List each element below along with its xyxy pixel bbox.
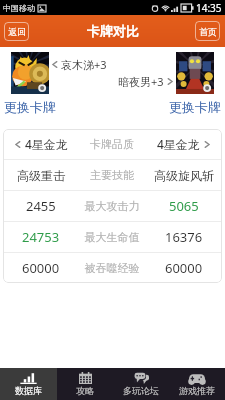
button[interactable]: 多玩论坛: [113, 368, 169, 400]
button[interactable]: 数据库: [0, 368, 57, 400]
staticText: 卡牌品质: [79, 137, 145, 151]
staticText: 高级重击: [17, 168, 65, 183]
staticText: 60000: [165, 259, 203, 277]
staticText: 高级旋风斩: [154, 168, 214, 183]
staticText: 卡牌对比: [87, 23, 139, 39]
staticText: 主要技能: [79, 168, 145, 182]
staticText: 4星金龙: [25, 136, 68, 152]
staticText: 更换卡牌: [169, 99, 221, 115]
button[interactable]: 哀木涕+3: [52, 57, 107, 72]
button[interactable]: 暗夜男+3: [118, 74, 173, 89]
staticText: 数据库: [15, 385, 42, 396]
staticText: 中国移动: [3, 3, 35, 13]
staticText: 最大攻击力: [79, 199, 145, 213]
staticText: 2455: [26, 197, 56, 215]
staticText: 4星金龙: [157, 136, 200, 152]
staticText: 最大生命值: [79, 230, 145, 244]
staticText: 游戏推荐: [179, 385, 215, 396]
staticText: 更换卡牌: [4, 99, 56, 115]
staticText: 攻略: [76, 385, 94, 396]
staticText: 首页: [199, 26, 217, 37]
button[interactable]: 游戏推荐: [169, 368, 225, 400]
staticText: 16376: [165, 228, 203, 246]
button[interactable]: 更换卡牌: [166, 52, 224, 115]
button[interactable]: 返回: [4, 22, 29, 41]
staticText: 24753: [22, 228, 60, 246]
button[interactable]: 首页: [195, 21, 220, 41]
button[interactable]: 攻略: [57, 368, 113, 400]
staticText: 返回: [8, 26, 26, 37]
staticText: 14:35: [196, 1, 222, 15]
staticText: 哀木涕+3: [61, 57, 107, 72]
staticText: 被吞噬经验: [79, 261, 145, 275]
staticText: 60000: [22, 259, 60, 277]
staticText: 多玩论坛: [123, 385, 159, 396]
staticText: 暗夜男+3: [118, 74, 164, 89]
button[interactable]: 更换卡牌: [1, 52, 59, 115]
staticText: 5065: [169, 197, 199, 215]
